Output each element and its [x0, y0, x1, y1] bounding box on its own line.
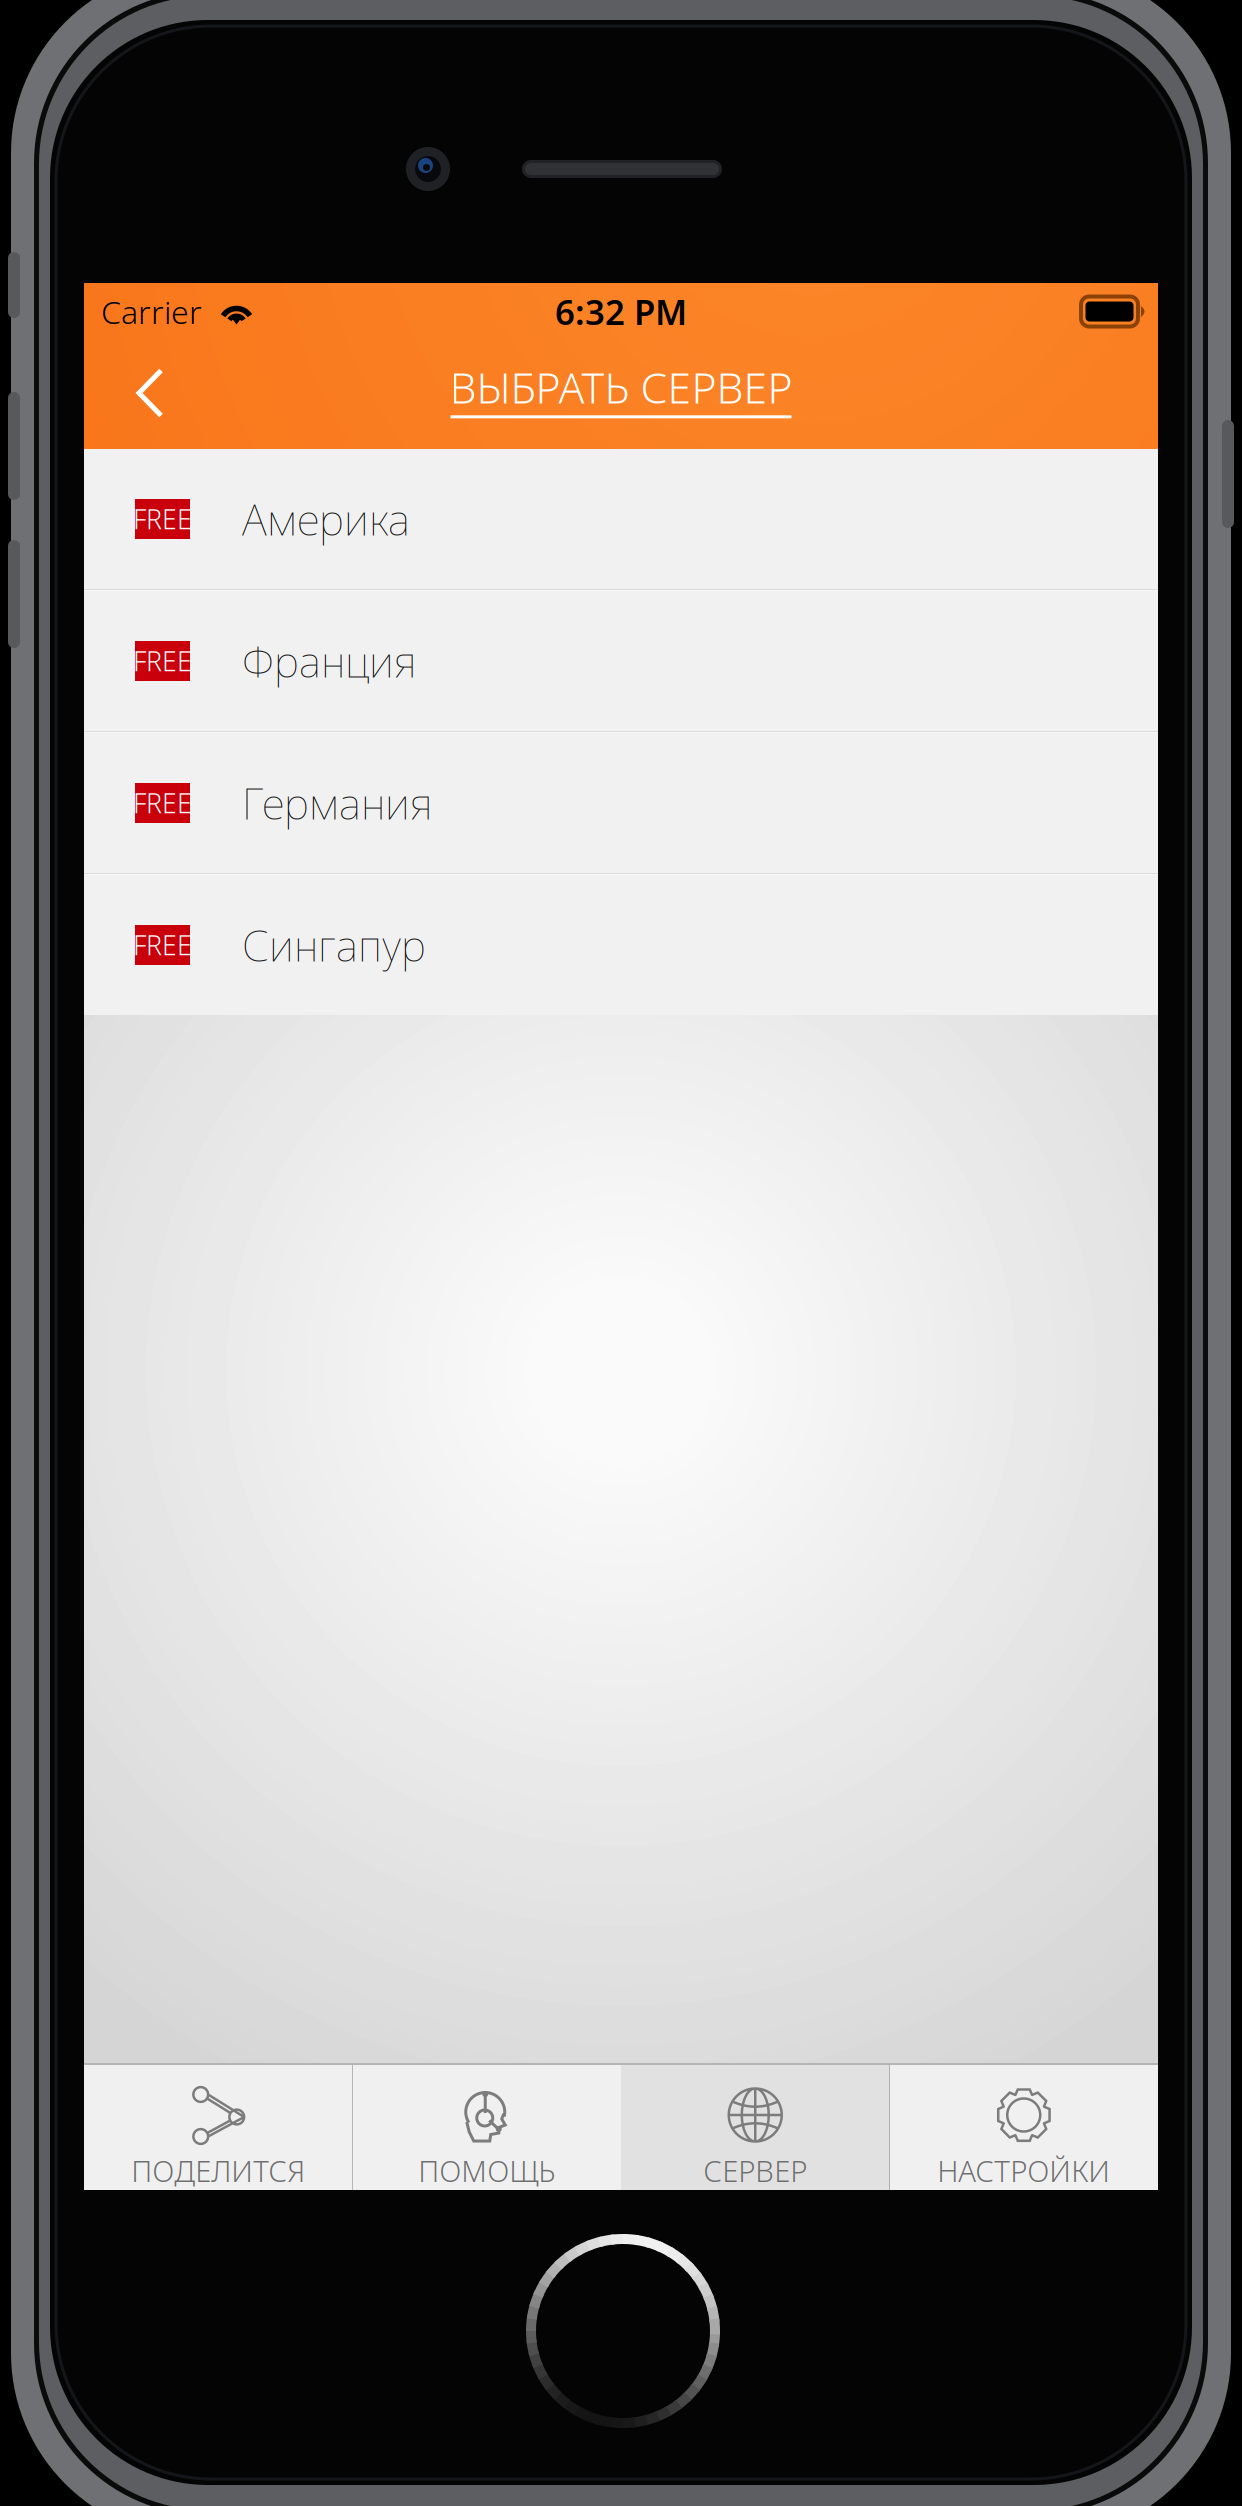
- button[interactable]: ПОДЕЛИТСЯ: [84, 2065, 352, 2190]
- staticText: FREE: [133, 643, 192, 679]
- staticText: Carrier: [101, 290, 202, 333]
- button[interactable]: FREE: [84, 449, 1158, 589]
- staticText: Германия: [242, 775, 432, 831]
- button[interactable]: НАСТРОЙКИ: [889, 2065, 1158, 2190]
- staticText: Америка: [242, 491, 410, 547]
- staticText: FREE: [133, 927, 192, 963]
- staticText: FREE: [133, 785, 192, 821]
- button[interactable]: ПОМОЩЬ: [352, 2065, 621, 2190]
- button[interactable]: СЕРВЕР: [621, 2065, 889, 2190]
- staticText: НАСТРОЙКИ: [937, 2151, 1110, 2190]
- button[interactable]: Back: [84, 340, 208, 449]
- button[interactable]: FREE: [84, 591, 1158, 731]
- staticText: FREE: [133, 501, 192, 537]
- staticText: 6:32 PM: [555, 288, 687, 334]
- staticText: ВЫБРАТЬ СЕРВЕР: [449, 359, 792, 415]
- staticText: Франция: [242, 633, 416, 689]
- button[interactable]: FREE: [84, 875, 1158, 1015]
- staticText: ПОМОЩЬ: [418, 2151, 555, 2190]
- staticText: ПОДЕЛИТСЯ: [131, 2151, 305, 2190]
- staticText: Сингапур: [242, 917, 426, 973]
- staticText: СЕРВЕР: [703, 2151, 807, 2190]
- button[interactable]: FREE: [84, 733, 1158, 873]
